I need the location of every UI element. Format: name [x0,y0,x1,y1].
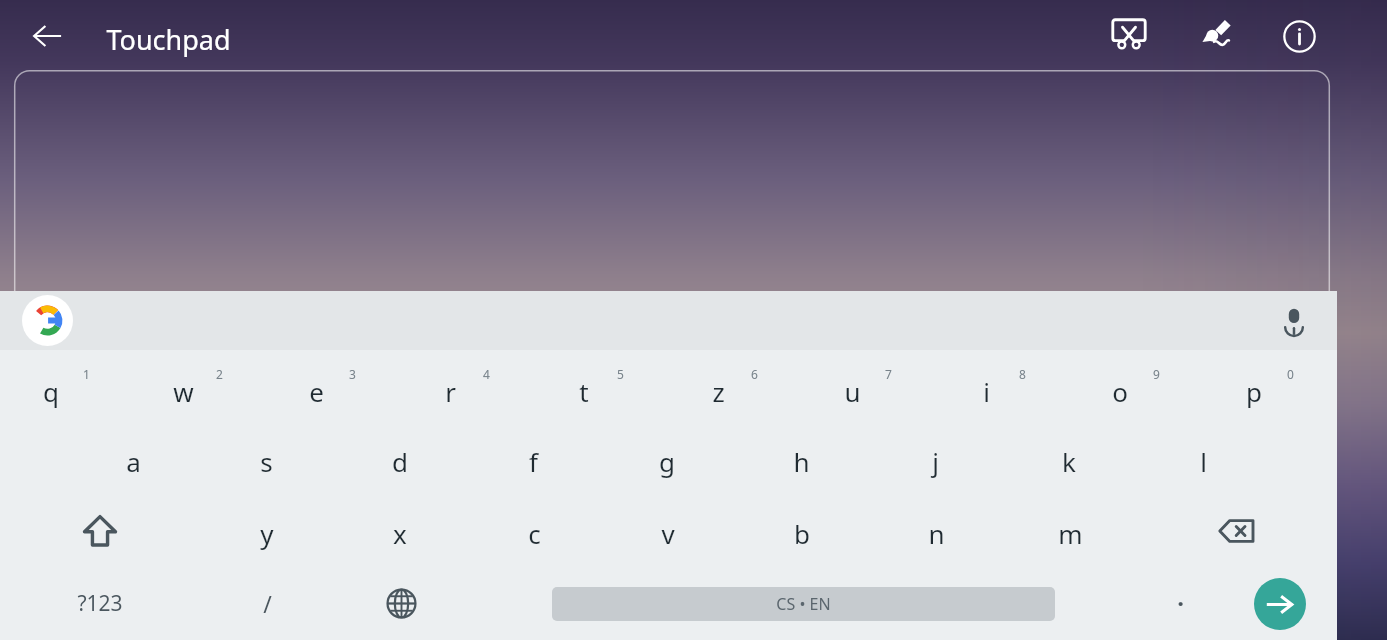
staticText: u [844,374,861,409]
staticText: 9 [1153,366,1160,382]
staticText: x [393,516,407,551]
staticText: 4 [483,366,490,382]
button[interactable]: Change language [335,567,468,640]
staticText: k [1062,444,1076,479]
staticText: . [1177,580,1184,613]
staticText: o [1112,374,1128,409]
button[interactable]: x [333,495,467,567]
button[interactable]: . [1138,567,1222,640]
button[interactable]: Back [22,11,72,61]
button[interactable]: g [600,423,734,495]
staticText: w [173,374,194,409]
staticText: m [1058,516,1083,551]
staticText: ?123 [77,589,123,618]
button[interactable]: w [133,350,266,423]
staticText: 5 [617,366,624,382]
staticText: 8 [1019,366,1026,382]
button[interactable]: t [533,350,667,423]
button[interactable]: m [1003,495,1137,567]
button[interactable]: l [1136,423,1270,495]
staticText: Touchpad [106,21,231,58]
button[interactable]: / [200,567,335,640]
staticText: c [528,516,541,551]
staticText: y [260,516,274,551]
button[interactable]: u [801,350,935,423]
staticText: d [392,444,408,479]
button[interactable]: h [734,423,868,495]
button[interactable]: Google [22,295,73,346]
button[interactable]: Draw [1189,11,1239,61]
staticText: s [260,444,273,479]
button[interactable]: n [869,495,1003,567]
staticText: j [932,444,939,479]
button[interactable]: o [1069,350,1203,423]
staticText: f [529,444,538,479]
button[interactable]: ?123 [0,567,200,640]
staticText: l [1200,444,1207,479]
button[interactable]: Info [1274,11,1324,61]
button[interactable]: s [200,423,333,495]
staticText: z [712,374,725,409]
staticText: r [445,374,456,409]
button[interactable]: j [868,423,1002,495]
button[interactable]: a [67,423,200,495]
staticText: p [1246,374,1262,409]
button[interactable]: r [399,350,533,423]
staticText: q [43,374,59,409]
staticText: 2 [216,366,223,382]
button[interactable]: f [466,423,600,495]
staticText: 1 [83,366,90,382]
staticText: b [794,516,810,551]
staticText: 7 [885,366,892,382]
button[interactable]: p [1203,350,1337,423]
staticText: 6 [751,366,758,382]
staticText: 0 [1287,366,1294,382]
staticText: t [579,374,589,409]
staticText: 3 [349,366,356,382]
staticText: CS • EN [776,593,831,615]
button[interactable]: k [1002,423,1136,495]
button[interactable]: Shift [0,495,200,567]
button[interactable]: b [735,495,869,567]
staticText: g [659,444,675,479]
button[interactable]: z [667,350,801,423]
button[interactable]: Voice input [1268,295,1320,347]
staticText: a [126,444,141,479]
button[interactable]: e [266,350,399,423]
button[interactable]: d [333,423,466,495]
button[interactable]: i [935,350,1069,423]
staticText: n [928,516,945,551]
staticText: / [263,588,272,619]
staticText: i [983,374,990,409]
button[interactable]: Enter [1254,578,1306,630]
button[interactable]: c [467,495,601,567]
staticText: v [661,516,675,551]
button[interactable]: Space [552,587,1055,621]
staticText: h [793,444,810,479]
button[interactable]: Backspace [1137,495,1337,567]
button[interactable]: q [0,350,133,423]
button[interactable]: Touchpad area [14,70,1330,295]
staticText: e [309,374,324,409]
button[interactable]: v [601,495,735,567]
button[interactable]: y [200,495,333,567]
button[interactable]: Screenshot [1104,11,1154,61]
